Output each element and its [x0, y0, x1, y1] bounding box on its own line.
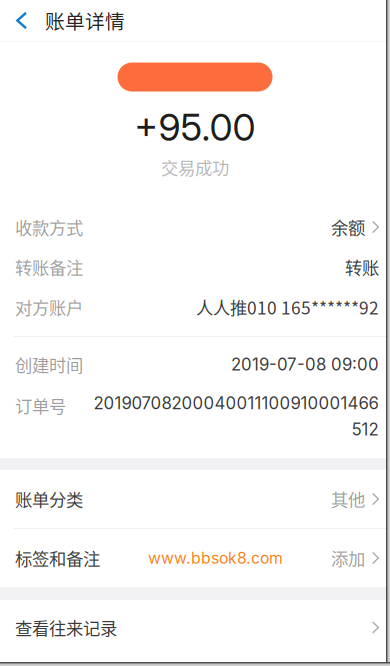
- button[interactable]: 返回: [0, 0, 45, 41]
- button[interactable]: 收款方式: [0, 207, 390, 247]
- staticText: 转账: [345, 254, 379, 280]
- staticText: 创建时间: [15, 352, 83, 377]
- button[interactable]: 账单分类: [0, 470, 390, 528]
- staticText: 人人推010 165******92: [196, 294, 379, 320]
- staticText: www.bbsok8.com: [148, 548, 283, 567]
- button[interactable]: 查看往来记录: [0, 600, 390, 655]
- staticText: 订单号: [15, 393, 66, 418]
- staticText: 添加: [331, 545, 365, 571]
- staticText: 对方账户: [15, 294, 83, 320]
- staticText: 交易成功: [161, 155, 229, 180]
- staticText: 查看往来记录: [15, 615, 117, 640]
- staticText: 余额: [331, 214, 365, 240]
- staticText: 收款方式: [15, 214, 83, 240]
- staticText: 账单详情: [45, 6, 125, 35]
- staticText: 账单分类: [15, 486, 83, 512]
- staticText: 其他: [331, 486, 365, 512]
- staticText: 2019-07-08 09:00: [231, 354, 379, 375]
- button[interactable]: 标签和备注: [0, 529, 390, 587]
- staticText: 转账备注: [15, 254, 83, 280]
- staticText: 20190708200040011100910001466512: [93, 393, 378, 440]
- staticText: 标签和备注: [15, 545, 100, 571]
- staticText: +95.00: [134, 104, 255, 150]
